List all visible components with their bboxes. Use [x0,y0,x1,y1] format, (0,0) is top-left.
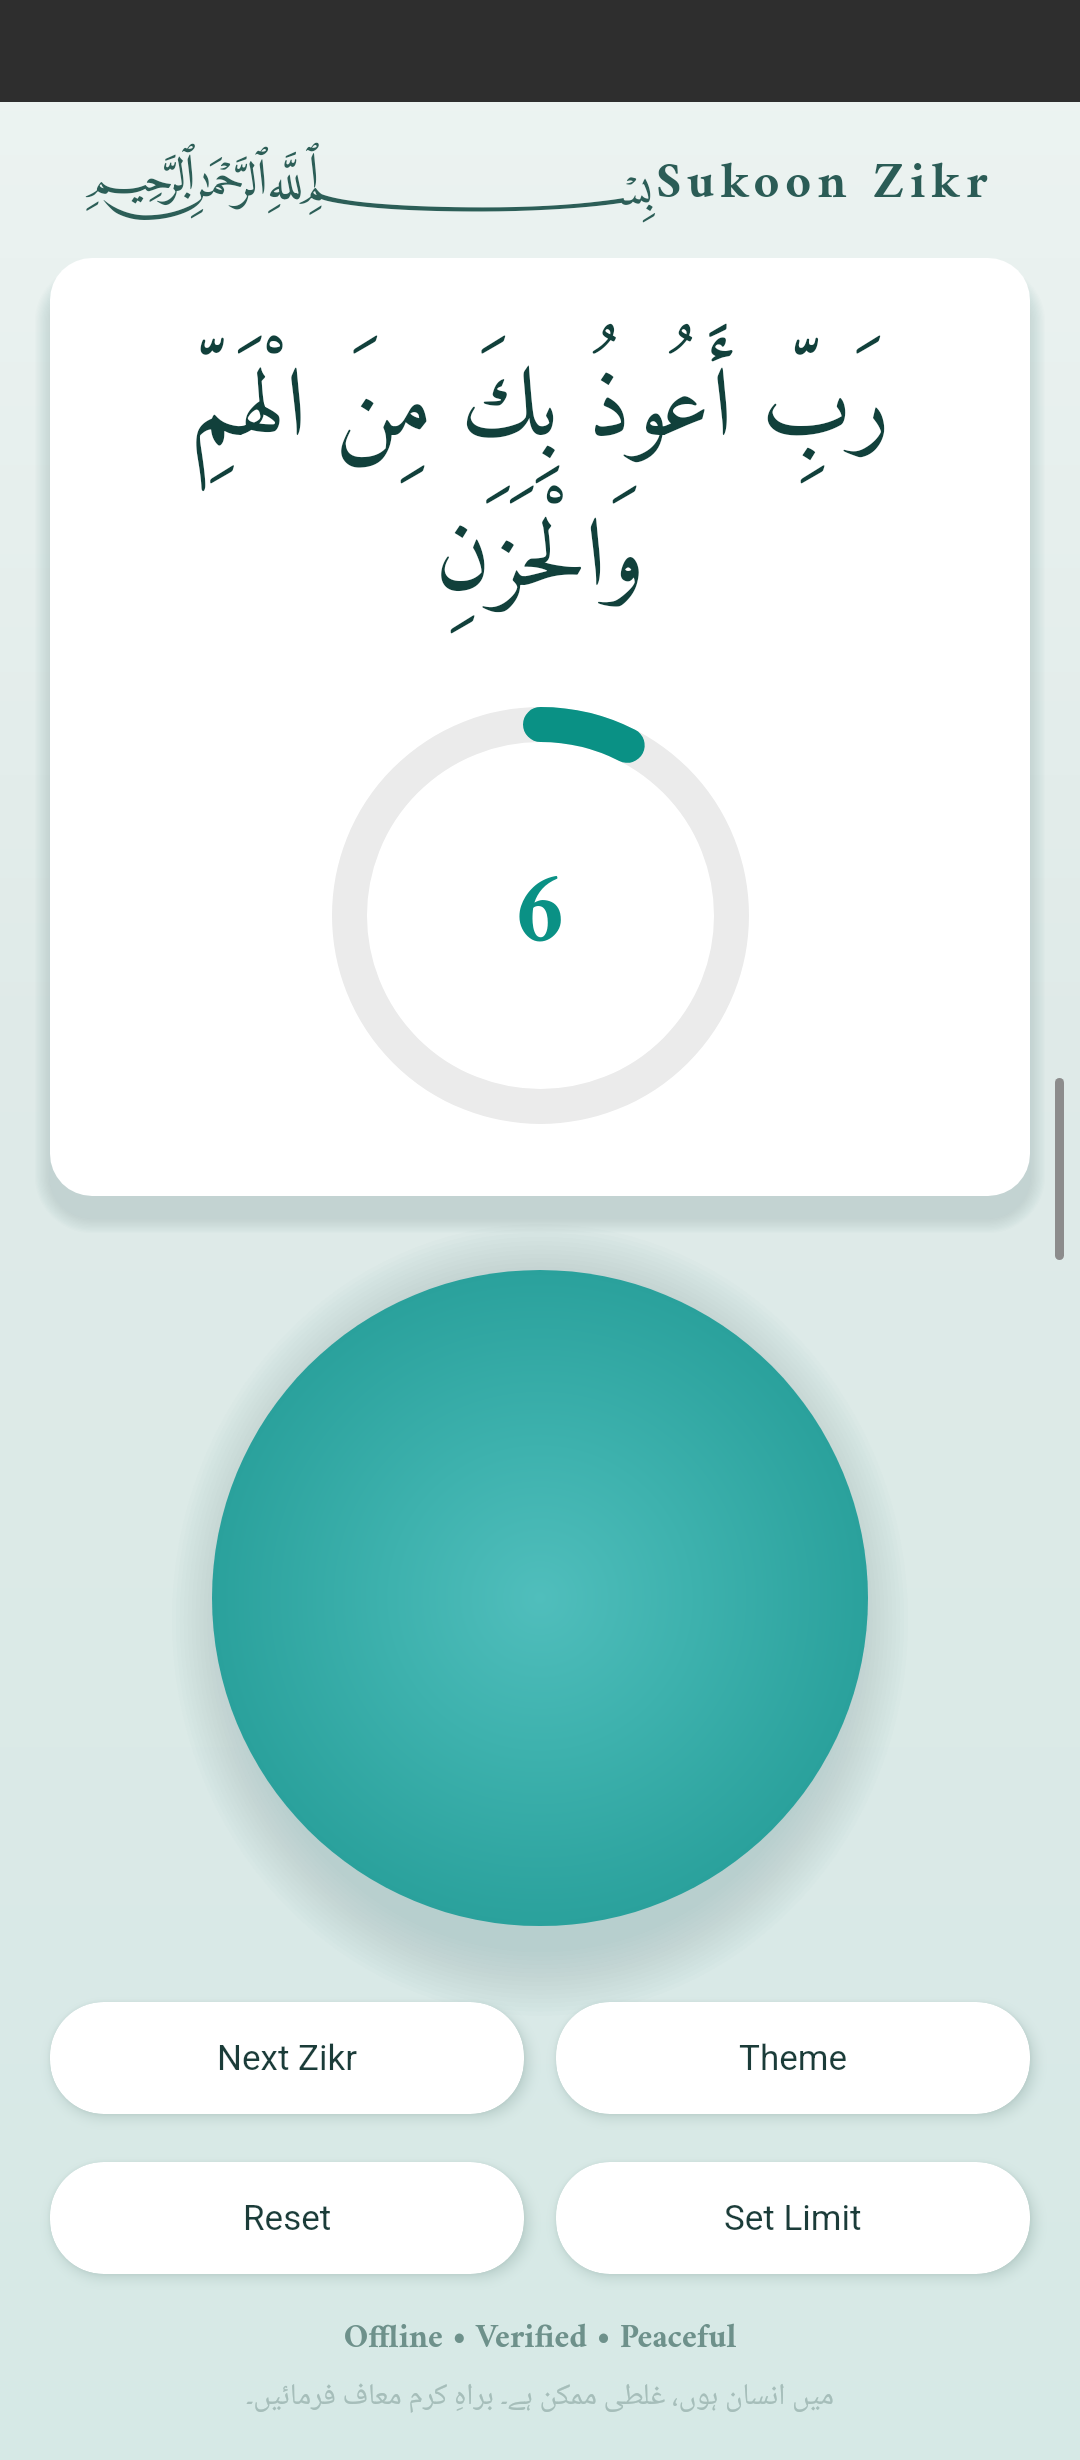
button[interactable]: Tap to count zikr [212,1270,868,1926]
staticText: Next Zikr [217,2038,358,2079]
staticText: رَبِّ أَعُوذُ بِكَ مِنَ الْهَمِّ وَالْحَ… [110,326,970,646]
staticText: 6 [513,826,568,1005]
button[interactable]: Reset [50,2162,524,2274]
button[interactable]: Set Limit [556,2162,1030,2274]
button[interactable]: Theme [556,2002,1030,2114]
staticText: Sukoon Zikr [656,141,994,229]
staticText: Reset [243,2198,332,2239]
staticText: Theme [739,2038,847,2079]
staticText: Set Limit [724,2198,862,2239]
button[interactable]: Next Zikr [50,2002,524,2114]
staticText: ﷽ [82,136,656,224]
staticText: Offline • Verified • Peaceful [0,2310,1080,2368]
staticText: میں انسان ہوں، غلطی ممکن ہے۔ براہِ کرم م… [40,2372,1040,2423]
